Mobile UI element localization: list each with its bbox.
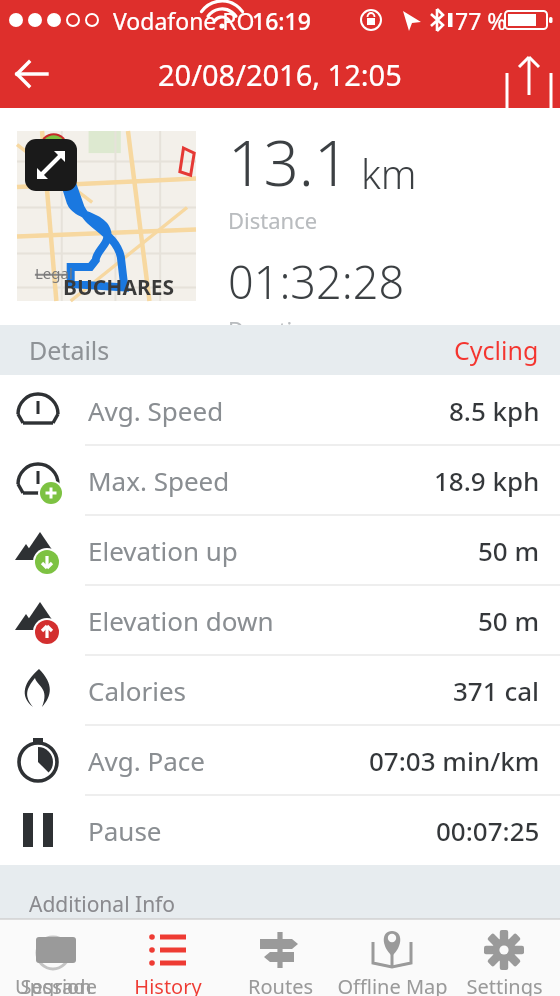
button[interactable]: Routes: [224, 920, 336, 996]
staticText: Distance: [228, 205, 318, 235]
staticText: History: [134, 973, 202, 996]
button[interactable]: Avg. Pace: [0, 725, 560, 795]
staticText: 07:03 min/km: [369, 743, 540, 778]
button[interactable]: Back: [0, 44, 60, 104]
button[interactable]: Avg. Speed: [0, 375, 560, 445]
button[interactable]: Elevation up: [0, 515, 560, 585]
staticText: 371 cal: [453, 673, 540, 708]
button[interactable]: Share: [498, 43, 560, 105]
button[interactable]: Map: [17, 131, 196, 301]
staticText: Settings: [466, 973, 543, 996]
staticText: 50 m: [478, 533, 540, 568]
staticText: km: [361, 146, 417, 200]
staticText: 16:19: [252, 5, 311, 36]
staticText: Elevation up: [88, 533, 238, 568]
staticText: Routes: [248, 973, 313, 996]
staticText: Offline Map: [337, 973, 448, 996]
staticText: 50 m: [478, 603, 540, 638]
button[interactable]: Session: [0, 920, 112, 996]
staticText: Session: [20, 973, 92, 996]
staticText: Max. Speed: [88, 463, 230, 498]
staticText: Additional Info: [29, 890, 176, 919]
staticText: Cycling: [454, 333, 539, 367]
button[interactable]: Cycling: [454, 333, 539, 367]
staticText: BUCHARES: [63, 273, 175, 301]
staticText: 00:07:25: [436, 813, 540, 848]
button[interactable]: Settings: [448, 920, 560, 996]
staticText: Calories: [88, 673, 187, 708]
staticText: 77 %: [455, 5, 507, 36]
button[interactable]: Offline Map: [336, 920, 448, 996]
button[interactable]: Elevation down: [0, 585, 560, 655]
staticText: Elevation down: [88, 603, 274, 638]
staticText: Legal: [35, 263, 73, 283]
staticText: 18.9 kph: [434, 463, 540, 498]
staticText: 8.5 kph: [449, 393, 540, 428]
button[interactable]: Pause: [0, 795, 560, 865]
staticText: 01:32:28: [228, 251, 405, 312]
staticText: Pause: [88, 813, 162, 848]
staticText: Avg. Pace: [88, 743, 206, 778]
staticText: 13.1: [228, 120, 350, 204]
button[interactable]: Calories: [0, 655, 560, 725]
button[interactable]: Max. Speed: [0, 445, 560, 515]
staticText: Vodafone RO: [113, 5, 255, 36]
staticText: 20/08/2016, 12:05: [158, 55, 402, 94]
staticText: Duration: [228, 314, 320, 325]
staticText: Avg. Speed: [88, 393, 224, 428]
button[interactable]: History: [112, 920, 224, 996]
staticText: Details: [29, 333, 110, 367]
staticText: Upgrade: [15, 973, 97, 996]
